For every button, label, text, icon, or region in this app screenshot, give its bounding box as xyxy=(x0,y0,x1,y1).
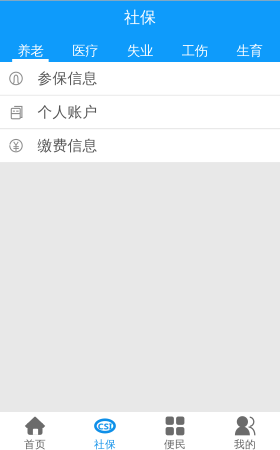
staticText: 首页 xyxy=(24,438,46,450)
button[interactable]: CSI xyxy=(70,412,140,450)
staticText: 养老 xyxy=(17,43,43,59)
button[interactable]: 养老 xyxy=(3,34,58,62)
staticText: 我的 xyxy=(234,438,256,450)
staticText: 便民 xyxy=(164,438,186,450)
button[interactable]: 工伤 xyxy=(167,34,222,62)
button[interactable]: 生育 xyxy=(222,34,277,62)
staticText: 失业 xyxy=(127,43,153,59)
staticText: 缴费信息 xyxy=(37,137,97,155)
staticText: 医疗 xyxy=(72,43,98,59)
button[interactable]: 失业 xyxy=(113,34,167,62)
button[interactable]: 我的 xyxy=(210,412,280,450)
button[interactable]: 首页 xyxy=(0,412,70,450)
button[interactable]: 个人账户 xyxy=(0,96,280,128)
staticText: 生育 xyxy=(237,43,263,59)
staticText: CSI xyxy=(97,420,112,432)
staticText: 工伤 xyxy=(182,43,208,59)
button[interactable]: 医疗 xyxy=(58,34,113,62)
button[interactable]: 便民 xyxy=(140,412,210,450)
staticText: 社保 xyxy=(94,438,116,450)
staticText: 社保 xyxy=(124,8,156,27)
staticText: 参保信息 xyxy=(37,69,97,87)
button[interactable]: 参保信息 xyxy=(0,62,280,95)
button[interactable]: 缴费信息 xyxy=(0,129,280,162)
staticText: 个人账户 xyxy=(37,103,97,121)
